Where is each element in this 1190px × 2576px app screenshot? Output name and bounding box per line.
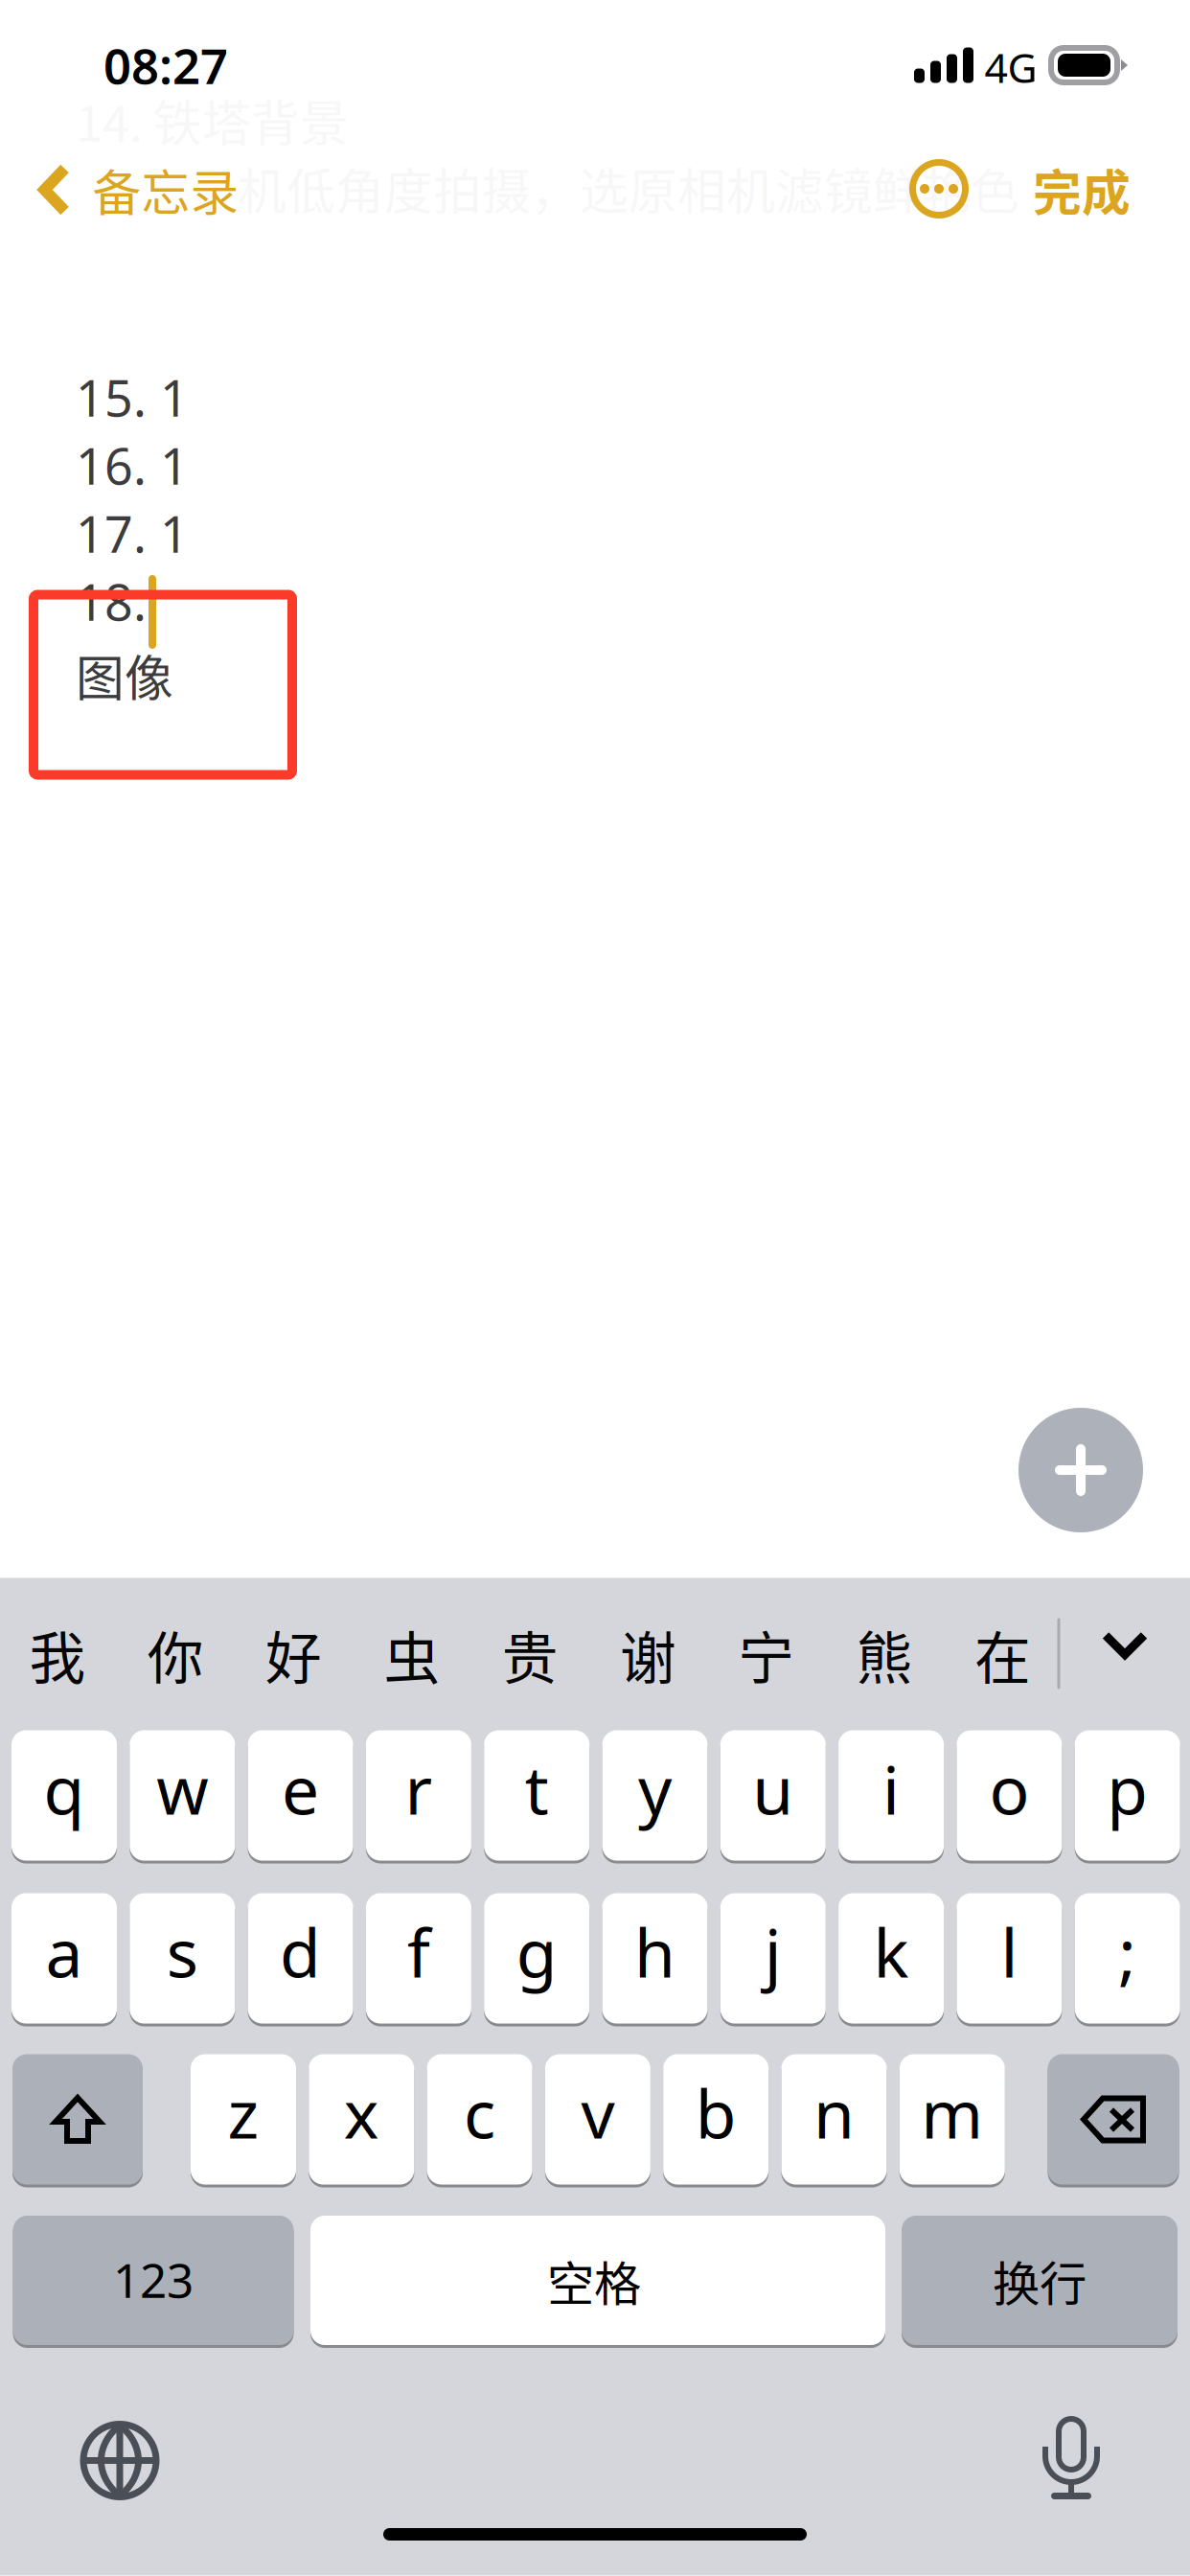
- staticText: 你: [147, 1614, 204, 1695]
- staticText: 谢: [620, 1614, 676, 1695]
- staticText: k: [873, 1908, 909, 1996]
- button[interactable]: o: [957, 1729, 1062, 1862]
- staticText: 17. 1: [76, 500, 189, 566]
- button[interactable]: 空格: [310, 2214, 885, 2346]
- staticText: y: [638, 1745, 672, 1833]
- button[interactable]: 123: [13, 2214, 294, 2346]
- button[interactable]: n: [781, 2053, 887, 2186]
- button[interactable]: x: [309, 2053, 414, 2186]
- staticText: 宁: [738, 1614, 795, 1695]
- staticText: u: [752, 1745, 794, 1833]
- staticText: 熊: [856, 1614, 913, 1695]
- staticText: 在: [974, 1614, 1031, 1695]
- staticText: o: [989, 1745, 1029, 1833]
- staticText: 空格: [547, 2246, 641, 2315]
- staticText: 4G: [984, 40, 1037, 94]
- button[interactable]: l: [957, 1892, 1062, 2025]
- staticText: a: [46, 1908, 83, 1996]
- button[interactable]: 在: [947, 1596, 1058, 1713]
- button[interactable]: 备忘录: [0, 139, 268, 241]
- staticText: 贵: [502, 1614, 558, 1695]
- staticText: 完成: [1033, 155, 1131, 225]
- button[interactable]: ;: [1075, 1892, 1180, 2025]
- staticText: i: [883, 1745, 900, 1833]
- button[interactable]: 贵: [474, 1596, 586, 1713]
- button[interactable]: Hide candidates: [1063, 1587, 1187, 1703]
- staticText: t: [525, 1745, 549, 1833]
- staticText: 图像: [76, 640, 173, 710]
- button[interactable]: m: [899, 2053, 1005, 2186]
- button[interactable]: d: [248, 1892, 353, 2025]
- staticText: l: [1001, 1908, 1018, 1996]
- button[interactable]: 宁: [711, 1596, 822, 1713]
- button[interactable]: 谢: [593, 1596, 704, 1713]
- button[interactable]: Shift: [12, 2053, 143, 2186]
- button[interactable]: h: [602, 1892, 708, 2025]
- staticText: 123: [113, 2248, 194, 2311]
- staticText: 我: [29, 1614, 86, 1695]
- staticText: 好: [265, 1614, 322, 1695]
- staticText: x: [344, 2069, 379, 2157]
- staticText: 14. 铁塔背景: [76, 85, 349, 155]
- button[interactable]: w: [130, 1729, 235, 1862]
- button[interactable]: g: [484, 1892, 589, 2025]
- button[interactable]: t: [484, 1729, 589, 1862]
- staticText: 虫: [384, 1614, 440, 1695]
- button[interactable]: q: [11, 1729, 117, 1862]
- staticText: 换行: [993, 2246, 1087, 2315]
- button[interactable]: Next keyboard: [76, 2416, 164, 2505]
- staticText: 18.: [76, 568, 147, 635]
- button[interactable]: 你: [120, 1596, 231, 1713]
- staticText: c: [464, 2069, 495, 2157]
- staticText: p: [1107, 1745, 1148, 1833]
- staticText: 机低角度拍摄，选原相机滤镜鲜艳色: [238, 153, 1019, 223]
- staticText: h: [634, 1908, 675, 1996]
- staticText: j: [764, 1908, 782, 1996]
- staticText: ;: [1118, 1908, 1137, 1996]
- button[interactable]: Delete: [1048, 2053, 1179, 2186]
- button[interactable]: Add attachment: [1018, 1408, 1143, 1532]
- button[interactable]: r: [366, 1729, 471, 1862]
- button[interactable]: Dictate: [1041, 2415, 1101, 2503]
- staticText: f: [407, 1908, 430, 1996]
- button[interactable]: c: [427, 2053, 532, 2186]
- button[interactable]: i: [838, 1729, 944, 1862]
- button[interactable]: k: [838, 1892, 944, 2025]
- staticText: z: [228, 2069, 259, 2157]
- button[interactable]: 完成: [1012, 139, 1152, 240]
- button[interactable]: More options: [896, 146, 982, 232]
- staticText: 08:27: [103, 33, 228, 97]
- staticText: q: [44, 1745, 85, 1833]
- button[interactable]: j: [720, 1892, 826, 2025]
- button[interactable]: p: [1075, 1729, 1180, 1862]
- button[interactable]: f: [366, 1892, 471, 2025]
- button[interactable]: v: [545, 2053, 650, 2186]
- staticText: e: [282, 1745, 319, 1833]
- staticText: 备忘录: [92, 155, 239, 225]
- button[interactable]: 我: [2, 1596, 113, 1713]
- button[interactable]: 换行: [902, 2214, 1178, 2346]
- staticText: 15. 1: [76, 364, 189, 430]
- staticText: s: [167, 1908, 198, 1996]
- staticText: b: [695, 2069, 737, 2157]
- button[interactable]: u: [720, 1729, 826, 1862]
- button[interactable]: b: [663, 2053, 769, 2186]
- button[interactable]: y: [602, 1729, 708, 1862]
- button[interactable]: z: [191, 2053, 296, 2186]
- staticText: d: [280, 1908, 321, 1996]
- button[interactable]: s: [130, 1892, 235, 2025]
- staticText: n: [813, 2069, 855, 2157]
- button[interactable]: a: [11, 1892, 117, 2025]
- staticText: v: [581, 2069, 615, 2157]
- button[interactable]: 熊: [829, 1596, 940, 1713]
- staticText: g: [516, 1908, 557, 1996]
- button[interactable]: 好: [238, 1596, 349, 1713]
- staticText: w: [156, 1745, 208, 1833]
- staticText: r: [405, 1745, 433, 1833]
- button[interactable]: e: [248, 1729, 353, 1862]
- button[interactable]: 虫: [356, 1596, 467, 1713]
- staticText: m: [921, 2069, 983, 2157]
- staticText: 16. 1: [76, 432, 189, 498]
